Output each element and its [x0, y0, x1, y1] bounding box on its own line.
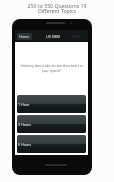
staticText: Home [19, 34, 30, 39]
button[interactable]: 1 Hour [17, 95, 86, 113]
staticText: How long does it take to clear three bee… [18, 64, 85, 73]
button[interactable]: 4:59 [72, 34, 80, 39]
button[interactable]: Home [17, 33, 32, 40]
staticText: US DMV [46, 34, 61, 39]
staticText: 3 Hours [18, 122, 32, 127]
staticText: 6 Hours [18, 142, 32, 147]
staticText: 4:59 [72, 34, 80, 39]
button[interactable]: 3 Hours [17, 115, 86, 133]
staticText: 250 to 550 Questions 19 Different Topics [0, 2, 114, 14]
button[interactable]: 6 Hours [17, 135, 86, 153]
staticText: 1 Hour [18, 102, 30, 107]
